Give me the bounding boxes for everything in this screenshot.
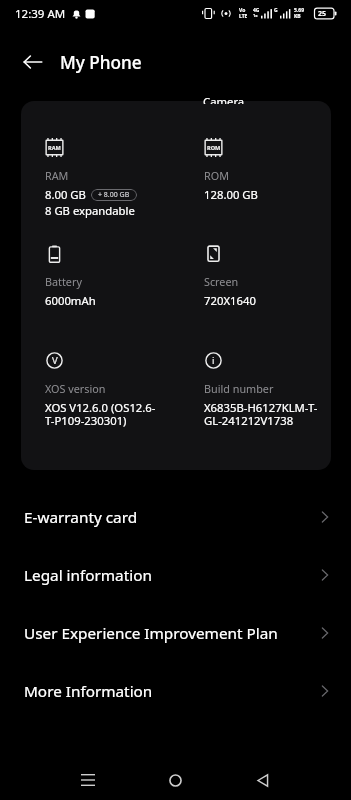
staticText: 128.00 GB (204, 187, 258, 202)
staticText: G (274, 7, 278, 14)
staticText: X6835B-H6127KLM-T- GL-241212V1738 (204, 400, 318, 428)
staticText: 12:39 AM (15, 6, 66, 22)
staticText: Camera (203, 96, 245, 104)
staticText: 720X1640 (204, 293, 256, 308)
staticText: E-warranty card (24, 507, 319, 528)
staticText: 8.00 GB (45, 187, 86, 202)
button[interactable]: Back (219, 754, 307, 800)
button[interactable]: User Experience Improvement Plan (0, 604, 351, 662)
staticText: + 8.00 GB (98, 190, 130, 200)
staticText: 5.69 KB (294, 7, 304, 20)
staticText: Screen (204, 274, 239, 289)
staticText: i (212, 354, 215, 367)
staticText: ROM (204, 168, 229, 183)
staticText: XOS V12.6.0 (OS12.6- T-P109-230301) (45, 400, 156, 428)
staticText: ROM (207, 144, 221, 152)
staticText: Legal information (24, 565, 319, 586)
button[interactable]: More Information (0, 662, 351, 720)
staticText: Build number (204, 381, 274, 396)
staticText: XOS version (45, 381, 106, 396)
staticText: 4G (253, 7, 260, 14)
staticText: V (52, 354, 58, 367)
staticText: Vo LTE (239, 7, 248, 20)
button[interactable]: Legal information (0, 546, 351, 604)
staticText: My Phone (60, 51, 142, 74)
staticText: 8 GB expandable (45, 203, 135, 218)
button[interactable]: Back (17, 46, 49, 78)
staticText: Battery (45, 274, 82, 289)
staticText: 25 (318, 9, 327, 19)
staticText: More Information (24, 681, 319, 702)
button[interactable]: E-warranty card (0, 488, 351, 546)
staticText: 6000mAh (45, 293, 96, 308)
staticText: RAM (45, 168, 69, 183)
staticText: 1x (253, 13, 258, 18)
button[interactable]: Home (131, 754, 219, 800)
staticText: User Experience Improvement Plan (24, 623, 319, 644)
staticText: RAM (48, 144, 61, 152)
button[interactable]: Recent apps (44, 754, 131, 800)
